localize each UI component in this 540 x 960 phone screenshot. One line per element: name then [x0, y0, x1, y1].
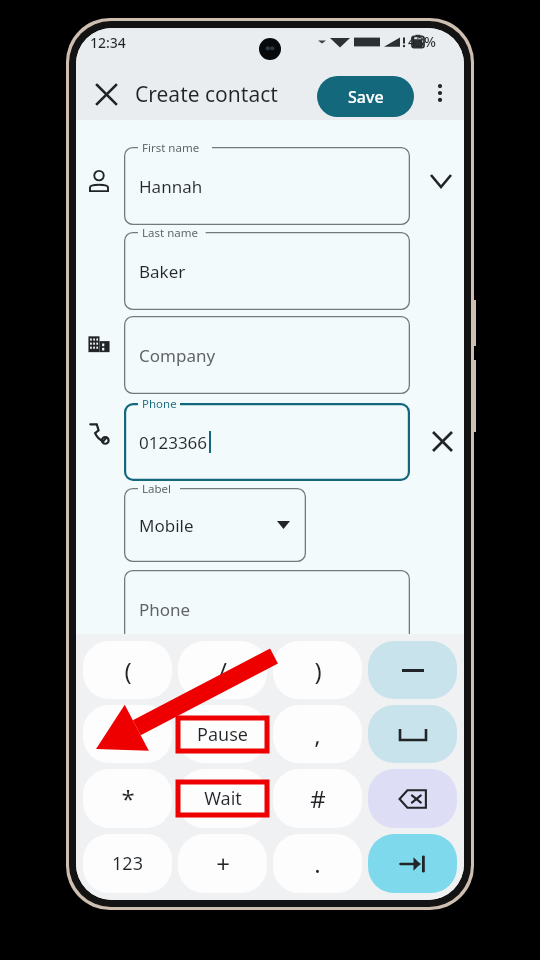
- button[interactable]: Phone: [124, 570, 410, 648]
- staticText: #: [310, 782, 326, 815]
- button[interactable]: Close: [84, 72, 128, 116]
- button[interactable]: Label: [124, 488, 306, 562]
- button[interactable]: Clear phone: [421, 420, 463, 462]
- staticText: Company: [139, 344, 216, 367]
- staticText: *: [121, 782, 135, 815]
- staticText: Last name: [142, 225, 198, 241]
- button[interactable]: Wait: [178, 769, 267, 828]
- staticText: 12:34: [90, 33, 126, 52]
- staticText: Pause: [197, 722, 248, 747]
- staticText: Baker: [139, 260, 186, 283]
- staticText: Phone: [139, 598, 191, 621]
- button[interactable]: Phone: [124, 403, 410, 481]
- button[interactable]: Space: [368, 705, 457, 763]
- button[interactable]: More options: [421, 74, 459, 112]
- staticText: ,: [314, 718, 321, 751]
- button[interactable]: Company: [124, 316, 410, 394]
- button[interactable]: #: [273, 769, 362, 828]
- staticText: Hannah: [139, 175, 203, 198]
- staticText: ): [314, 654, 322, 687]
- button[interactable]: Expand: [420, 160, 462, 202]
- staticText: 123: [112, 851, 143, 876]
- button[interactable]: 123: [83, 834, 172, 893]
- staticText: First name: [142, 140, 200, 156]
- button[interactable]: (: [83, 641, 172, 699]
- staticText: Label: [142, 481, 172, 497]
- button[interactable]: Backspace: [368, 769, 457, 828]
- button[interactable]: N: [83, 705, 172, 763]
- staticText: Wait: [204, 786, 242, 811]
- staticText: +: [216, 847, 230, 880]
- staticText: N: [118, 718, 137, 751]
- staticText: Mobile: [139, 514, 194, 537]
- button[interactable]: Last name: [124, 232, 410, 310]
- button[interactable]: ,: [273, 705, 362, 763]
- button[interactable]: .: [273, 834, 362, 893]
- staticText: Save: [348, 86, 384, 108]
- button[interactable]: *: [83, 769, 172, 828]
- staticText: .: [314, 847, 321, 880]
- staticText: (: [124, 654, 132, 687]
- button[interactable]: Next: [368, 834, 457, 893]
- staticText: Create contact: [135, 80, 278, 109]
- button[interactable]: First name: [124, 147, 410, 225]
- button[interactable]: +: [178, 834, 267, 893]
- staticText: /: [218, 654, 227, 687]
- button[interactable]: ): [273, 641, 362, 699]
- staticText: Phone: [142, 396, 177, 412]
- button[interactable]: Dash: [368, 641, 457, 699]
- button[interactable]: Save: [317, 76, 414, 117]
- staticText: 43%: [408, 32, 436, 51]
- button[interactable]: /: [178, 641, 267, 699]
- button[interactable]: Pause: [178, 705, 267, 763]
- staticText: 0123366: [139, 431, 208, 454]
